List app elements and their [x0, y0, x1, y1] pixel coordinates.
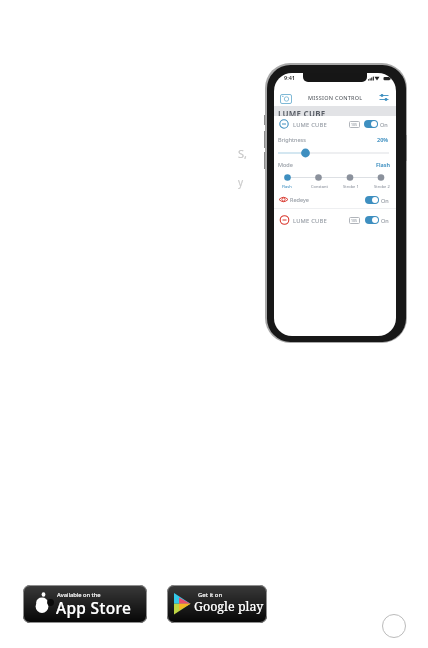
staticText: LUME CUBE	[293, 121, 327, 129]
staticText: y	[238, 175, 244, 189]
staticText: 105	[351, 122, 358, 127]
button[interactable]	[280, 94, 292, 104]
button[interactable]: Available on the	[23, 585, 147, 623]
staticText: Redeye	[290, 196, 309, 203]
staticText: 20%	[377, 136, 389, 143]
staticText: Flash	[282, 184, 292, 189]
button[interactable]	[379, 93, 389, 103]
button[interactable]	[365, 216, 379, 224]
staticText: Get it on	[198, 591, 223, 599]
staticText: Flash	[376, 161, 390, 168]
staticText: Google play	[194, 598, 264, 615]
staticText: LUME CUBE	[278, 108, 326, 116]
staticText: On	[381, 197, 389, 204]
staticText: Available on the	[57, 591, 101, 599]
staticText: Mode	[278, 161, 293, 168]
button[interactable]	[364, 120, 378, 128]
staticText: S,	[238, 146, 247, 161]
button[interactable]: Get it on	[167, 585, 267, 623]
staticText: App Store	[56, 597, 132, 618]
staticText: Strobe 2	[374, 184, 390, 189]
staticText: On	[380, 121, 388, 128]
button[interactable]	[365, 196, 379, 204]
staticText: Constant	[311, 184, 328, 189]
staticText: MISSION CONTROL	[308, 94, 363, 101]
staticText: Strobe 1	[343, 184, 359, 189]
staticText: 9:41	[284, 74, 295, 81]
staticText: Brightness	[278, 136, 306, 143]
staticText: 105	[351, 218, 358, 223]
staticText: On	[381, 217, 389, 224]
staticText: LUME CUBE	[293, 217, 327, 225]
